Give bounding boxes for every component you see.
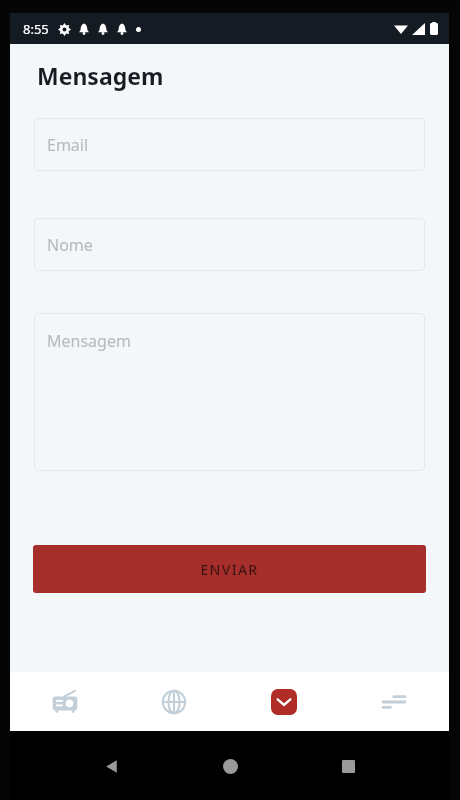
button[interactable]: Messages	[229, 672, 339, 731]
staticText: Mensagem	[37, 60, 164, 91]
button[interactable]: Playlist	[339, 672, 449, 731]
staticText: Nome	[47, 234, 93, 256]
staticText: Mensagem	[47, 330, 131, 352]
button[interactable]: Radio	[10, 672, 119, 731]
button[interactable]: Mensagem	[34, 313, 425, 471]
staticText: ENVIAR	[200, 560, 259, 579]
staticText: Email	[47, 134, 89, 156]
button[interactable]: Web	[119, 672, 229, 731]
staticText: 8:55	[23, 20, 49, 38]
button[interactable]: Nome	[34, 218, 425, 271]
button[interactable]: Home	[213, 749, 247, 783]
button[interactable]: Back	[94, 749, 128, 783]
button[interactable]: Email	[34, 118, 425, 171]
button[interactable]: ENVIAR	[33, 545, 426, 593]
button[interactable]: Recent apps	[331, 749, 365, 783]
